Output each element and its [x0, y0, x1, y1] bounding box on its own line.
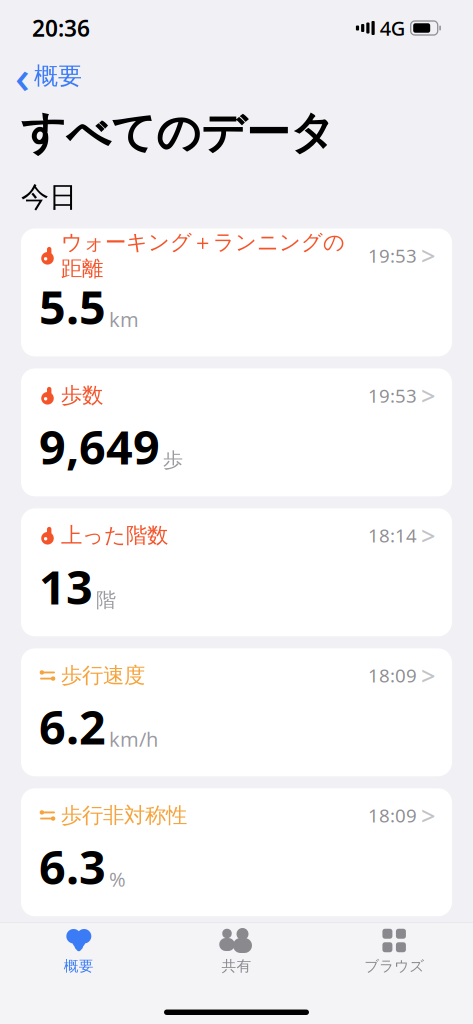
button[interactable]: 歩行速度 — [21, 648, 452, 776]
staticText: ブラウズ — [364, 957, 424, 975]
button[interactable]: 歩数 — [21, 368, 452, 496]
staticText: > — [421, 519, 435, 552]
staticText: km — [109, 306, 139, 332]
staticText: 歩行速度 — [61, 662, 145, 688]
staticText: ‹ — [15, 46, 30, 106]
staticText: 概要 — [64, 957, 94, 975]
button[interactable]: 歩行非対称性 — [21, 788, 452, 916]
staticText: 上った階数 — [61, 522, 168, 548]
staticText: 18:09 — [368, 943, 417, 968]
staticText: すべてのデータ — [21, 106, 335, 160]
staticText: km/h — [109, 726, 158, 752]
staticText: > — [421, 658, 435, 692]
staticText: ウォーキング＋ランニングの距離 — [61, 229, 345, 282]
staticText: > — [421, 379, 435, 412]
button[interactable]: 共有 — [158, 919, 315, 980]
staticText: 20:36 — [32, 13, 90, 43]
staticText: 13 — [39, 555, 93, 617]
staticText: 5.5 — [39, 275, 106, 337]
staticText: 歩 — [163, 448, 183, 472]
staticText: 歩行非対称性 — [61, 802, 187, 828]
button[interactable]: ブラウズ — [315, 919, 473, 980]
staticText: 4G — [380, 15, 406, 41]
staticText: 18:09 — [368, 803, 417, 828]
staticText: 階 — [96, 588, 116, 612]
button[interactable]: ‹ — [11, 44, 86, 108]
button[interactable]: 上った階数 — [21, 508, 452, 636]
staticText: > — [421, 938, 435, 972]
staticText: 6.3 — [39, 835, 106, 897]
staticText: 概要 — [34, 61, 82, 91]
staticText: 18:14 — [368, 523, 417, 548]
staticText: 歩数 — [61, 382, 103, 408]
staticText: % — [109, 866, 126, 892]
staticText: 共有 — [221, 957, 251, 975]
staticText: 今日 — [21, 180, 77, 214]
staticText: 歩行両脚支持時間 — [61, 942, 229, 968]
staticText: 9,649 — [39, 415, 160, 477]
button[interactable]: 歩行両脚支持時間 — [21, 928, 452, 983]
staticText: 19:53 — [368, 243, 417, 268]
staticText: > — [421, 798, 435, 832]
staticText: > — [421, 239, 435, 272]
staticText: 19:53 — [368, 383, 417, 408]
staticText: 6.2 — [39, 695, 106, 757]
button[interactable]: 概要 — [0, 919, 158, 980]
staticText: 18:09 — [368, 663, 417, 688]
button[interactable]: ウォーキング＋ランニングの距離 — [21, 228, 452, 356]
